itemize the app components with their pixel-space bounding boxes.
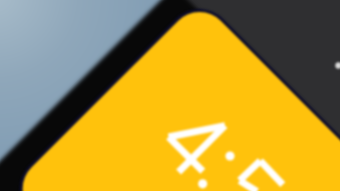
button[interactable]: Card 45 <box>0 0 340 191</box>
